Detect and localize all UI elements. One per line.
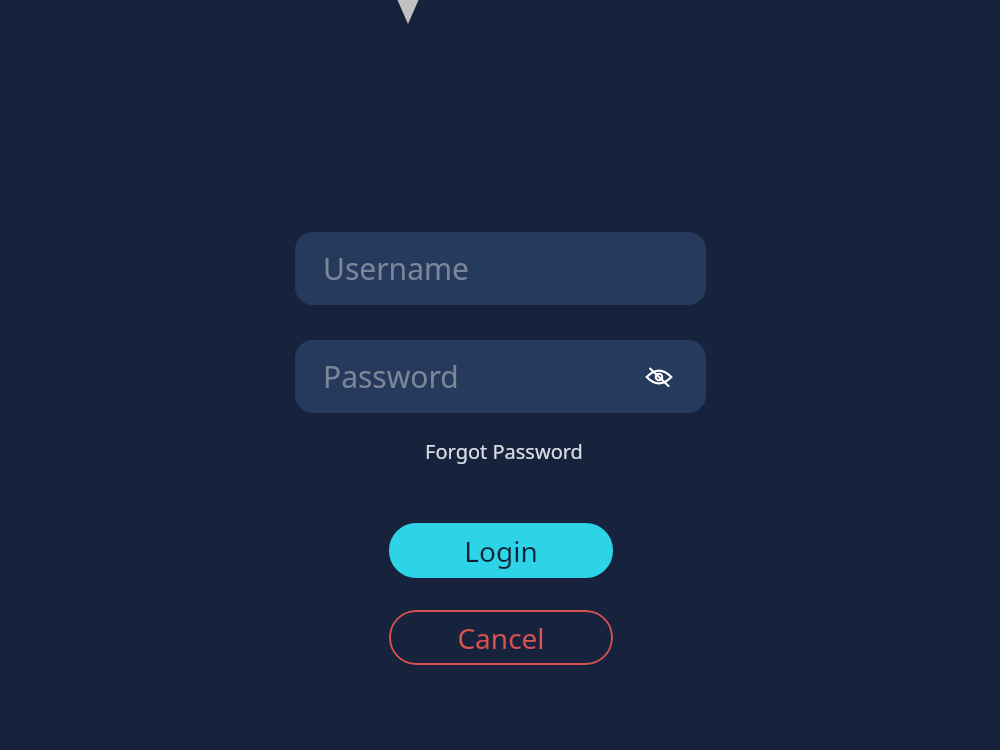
button[interactable]: Login: [389, 523, 613, 578]
button[interactable]: Cancel: [389, 610, 613, 665]
staticText: Password: [323, 356, 459, 397]
staticText: Forgot Password: [425, 438, 583, 465]
button[interactable]: Username: [295, 232, 706, 305]
button[interactable]: Show password: [642, 360, 676, 394]
staticText: Cancel: [457, 619, 545, 657]
staticText: Login: [464, 532, 538, 570]
button[interactable]: Password: [295, 340, 706, 413]
staticText: Username: [323, 248, 469, 289]
button[interactable]: Forgot Password: [400, 433, 608, 469]
